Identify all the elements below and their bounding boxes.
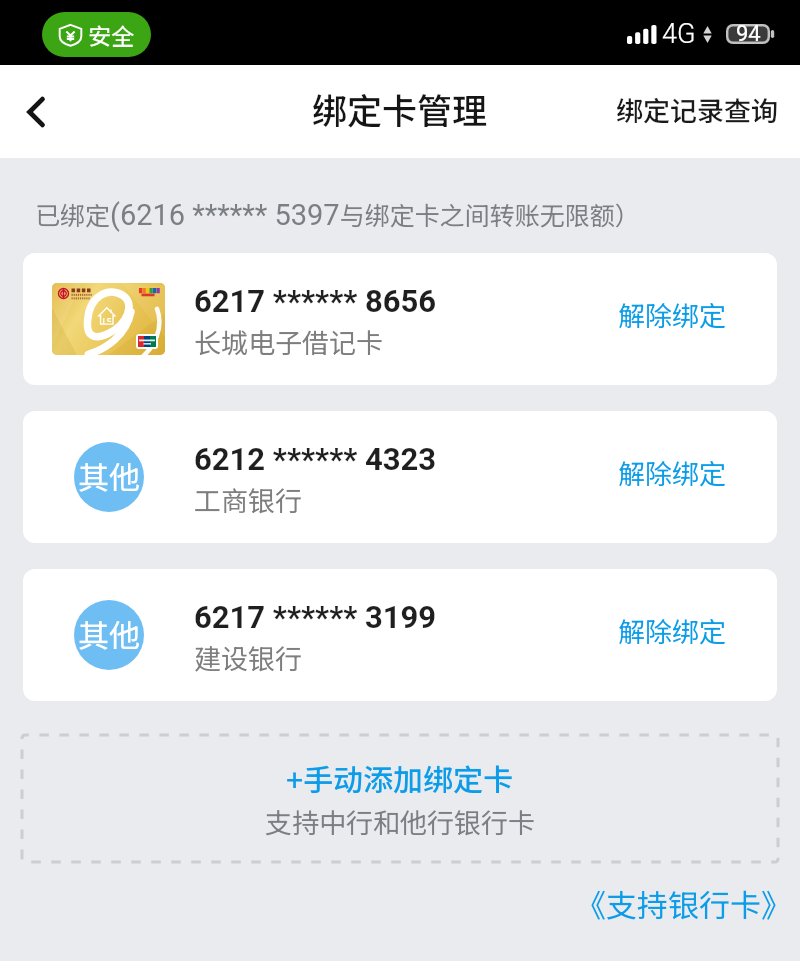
button[interactable]: 其他 xyxy=(23,411,777,543)
staticText: 已绑定(6216 ****** 5397与绑定卡之间转账无限额） xyxy=(35,196,640,232)
staticText: 6212 ****** 4323 xyxy=(194,441,437,477)
button[interactable]: 其他 xyxy=(23,569,777,701)
staticText: 解除绑定 xyxy=(618,295,726,334)
button[interactable]: Back xyxy=(0,76,72,148)
staticText: 解除绑定 xyxy=(618,611,726,650)
staticText: 安全 xyxy=(88,18,134,51)
staticText: 6217 ****** 3199 xyxy=(194,599,437,635)
button[interactable]: 解除绑定 xyxy=(594,253,777,385)
button[interactable]: 6217 ****** 8656 xyxy=(23,253,777,385)
staticText: 长城电子借记卡 xyxy=(194,322,383,361)
staticText: 工商银行 xyxy=(194,480,302,519)
staticText: 6217 ****** 8656 xyxy=(194,283,437,319)
button[interactable]: +手动添加绑定卡 xyxy=(22,735,778,862)
button[interactable]: 《支持银行卡》 xyxy=(561,881,778,926)
staticText: 其他 xyxy=(78,453,140,498)
staticText: 建设银行 xyxy=(194,638,302,677)
staticText: 94 xyxy=(736,21,761,47)
button[interactable]: 解除绑定 xyxy=(594,411,777,543)
staticText: +手动添加绑定卡 xyxy=(286,756,514,799)
button[interactable]: 绑定记录查询 xyxy=(616,92,800,131)
other: Secure xyxy=(59,18,134,51)
staticText: 其他 xyxy=(78,611,140,656)
staticText: 支持中行和他行银行卡 xyxy=(265,802,535,841)
staticText: 解除绑定 xyxy=(618,453,726,492)
staticText: 绑定卡管理 xyxy=(312,83,488,134)
button[interactable]: 解除绑定 xyxy=(594,569,777,701)
staticText: 4G xyxy=(662,18,696,50)
